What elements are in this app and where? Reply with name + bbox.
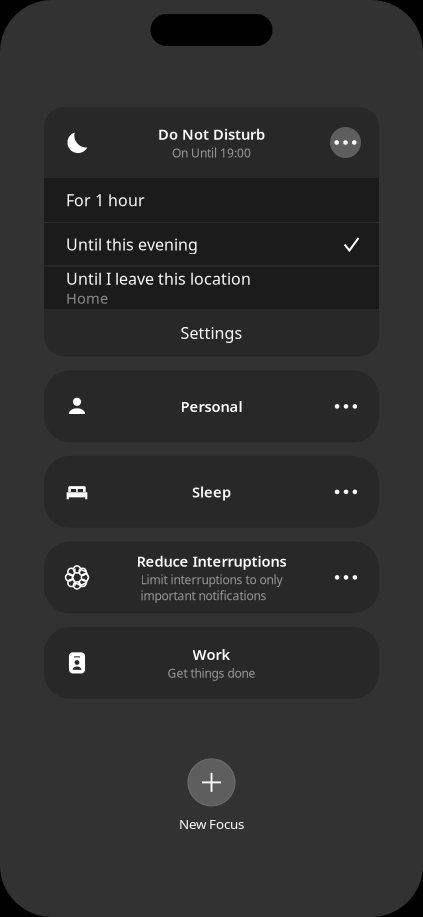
staticText: Until I leave this location	[66, 268, 251, 289]
staticText: Limit interruptions to only important no…	[140, 572, 282, 604]
staticText: Personal	[180, 397, 242, 416]
staticText: Until this evening	[66, 234, 198, 255]
button[interactable]: Settings	[44, 309, 379, 356]
button[interactable]: New Focus	[179, 759, 244, 833]
staticText: On Until 19:00	[172, 145, 251, 161]
staticText: Home	[66, 288, 108, 308]
staticText: Do Not Disturb	[158, 124, 265, 144]
button[interactable]: Personal	[44, 370, 379, 442]
staticText: Work	[192, 645, 230, 664]
staticText: New Focus	[179, 815, 244, 833]
staticText: For 1 hour	[66, 189, 145, 211]
button[interactable]: Until I leave this location	[44, 266, 379, 309]
staticText: Sleep	[192, 482, 231, 502]
button[interactable]: Until this evening	[44, 223, 379, 266]
staticText: Settings	[180, 322, 242, 343]
button[interactable]: Reduce Interruptions	[44, 541, 379, 613]
staticText: Reduce Interruptions	[136, 551, 286, 571]
staticText: Get things done	[167, 665, 255, 681]
button[interactable]: Sleep	[44, 456, 379, 528]
button[interactable]: Work	[44, 627, 379, 699]
button[interactable]: More Do Not Disturb options	[330, 127, 361, 158]
button[interactable]: For 1 hour	[44, 178, 379, 222]
